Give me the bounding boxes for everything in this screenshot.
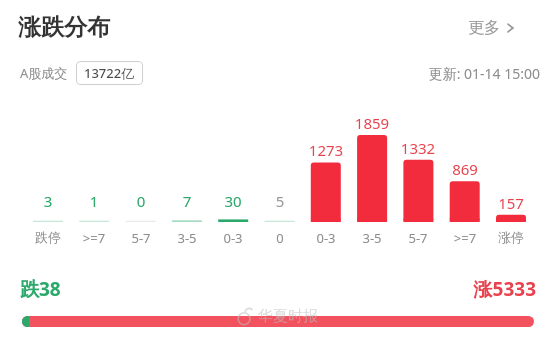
button[interactable]: 3-5 [344, 229, 400, 247]
button[interactable]: 5-7 [390, 229, 446, 247]
staticText: 5 [252, 191, 308, 211]
button[interactable]: 涨停 [483, 229, 539, 245]
button[interactable]: 5-7 [113, 229, 169, 247]
staticText: 0 [113, 191, 169, 211]
staticText: 3 [20, 191, 76, 211]
button[interactable]: >=7 [66, 229, 122, 247]
staticText: 0 [252, 229, 308, 247]
button[interactable]: >=7 [437, 229, 493, 247]
button[interactable]: 3-5 [159, 229, 215, 247]
staticText: 更新: 01-14 15:00 [392, 64, 540, 83]
staticText: 华夏时报 [258, 307, 318, 326]
staticText: 0-3 [298, 229, 354, 247]
staticText: 157 [483, 193, 539, 213]
staticText: >=7 [437, 229, 493, 247]
button[interactable]: 13722亿 [76, 61, 143, 85]
button[interactable]: 0-3 [298, 229, 354, 247]
staticText: 3-5 [159, 229, 215, 247]
staticText: 869 [437, 159, 493, 179]
button[interactable]: 0-3 [205, 229, 261, 247]
staticText: 5-7 [390, 229, 446, 247]
staticText: 更多 [468, 18, 500, 38]
staticText: 0-3 [205, 229, 261, 247]
staticText: 跌38 [20, 276, 61, 302]
staticText: 1859 [344, 113, 400, 133]
staticText: 5-7 [113, 229, 169, 247]
button[interactable]: 涨跌比例 [22, 316, 534, 327]
staticText: 1273 [298, 140, 354, 160]
button[interactable]: 跌停 [20, 229, 76, 245]
staticText: A股成交 [20, 64, 68, 82]
staticText: 涨跌分布 [18, 13, 110, 42]
staticText: 13722亿 [84, 64, 135, 82]
staticText: 涨停 [483, 229, 539, 245]
staticText: 1 [66, 191, 122, 211]
staticText: 1332 [390, 138, 446, 158]
staticText: 30 [205, 191, 261, 211]
staticText: 3-5 [344, 229, 400, 247]
staticText: 7 [159, 191, 215, 211]
staticText: 涨5333 [434, 276, 536, 302]
staticText: 跌停 [20, 229, 76, 245]
staticText: >=7 [66, 229, 122, 247]
button[interactable]: 0 [252, 229, 308, 247]
button[interactable]: 更多 [464, 14, 519, 42]
